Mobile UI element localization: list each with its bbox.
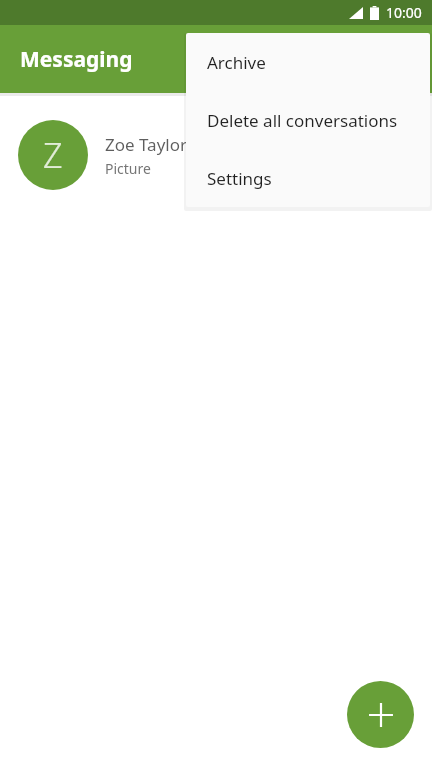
staticText: Archive	[207, 51, 266, 74]
staticText: Zoe Taylor	[105, 133, 188, 156]
button[interactable]: Settings	[186, 149, 430, 207]
button[interactable]: Z	[0, 104, 432, 206]
staticText: Z	[43, 132, 63, 178]
staticText: Settings	[207, 167, 272, 190]
button[interactable]: Archive	[186, 33, 430, 91]
button[interactable]: New conversation	[347, 681, 414, 748]
staticText: Messaging	[20, 45, 133, 74]
staticText: Delete all conversations	[207, 109, 398, 132]
button[interactable]: Delete all conversations	[186, 91, 430, 149]
staticText: Picture	[105, 159, 151, 178]
staticText: 10:00	[386, 3, 422, 22]
